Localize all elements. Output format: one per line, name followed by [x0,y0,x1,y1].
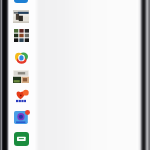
button[interactable]: Photo [13,10,29,23]
button[interactable]: Browser [15,52,28,64]
button[interactable]: Collage [13,70,29,83]
button[interactable]: Gallery [14,29,29,42]
button[interactable]: Messages [14,0,28,3]
button[interactable]: Shopping [16,90,28,99]
button[interactable]: Label [16,99,26,103]
button[interactable]: Video [14,111,29,124]
button[interactable]: Mail [14,132,29,146]
